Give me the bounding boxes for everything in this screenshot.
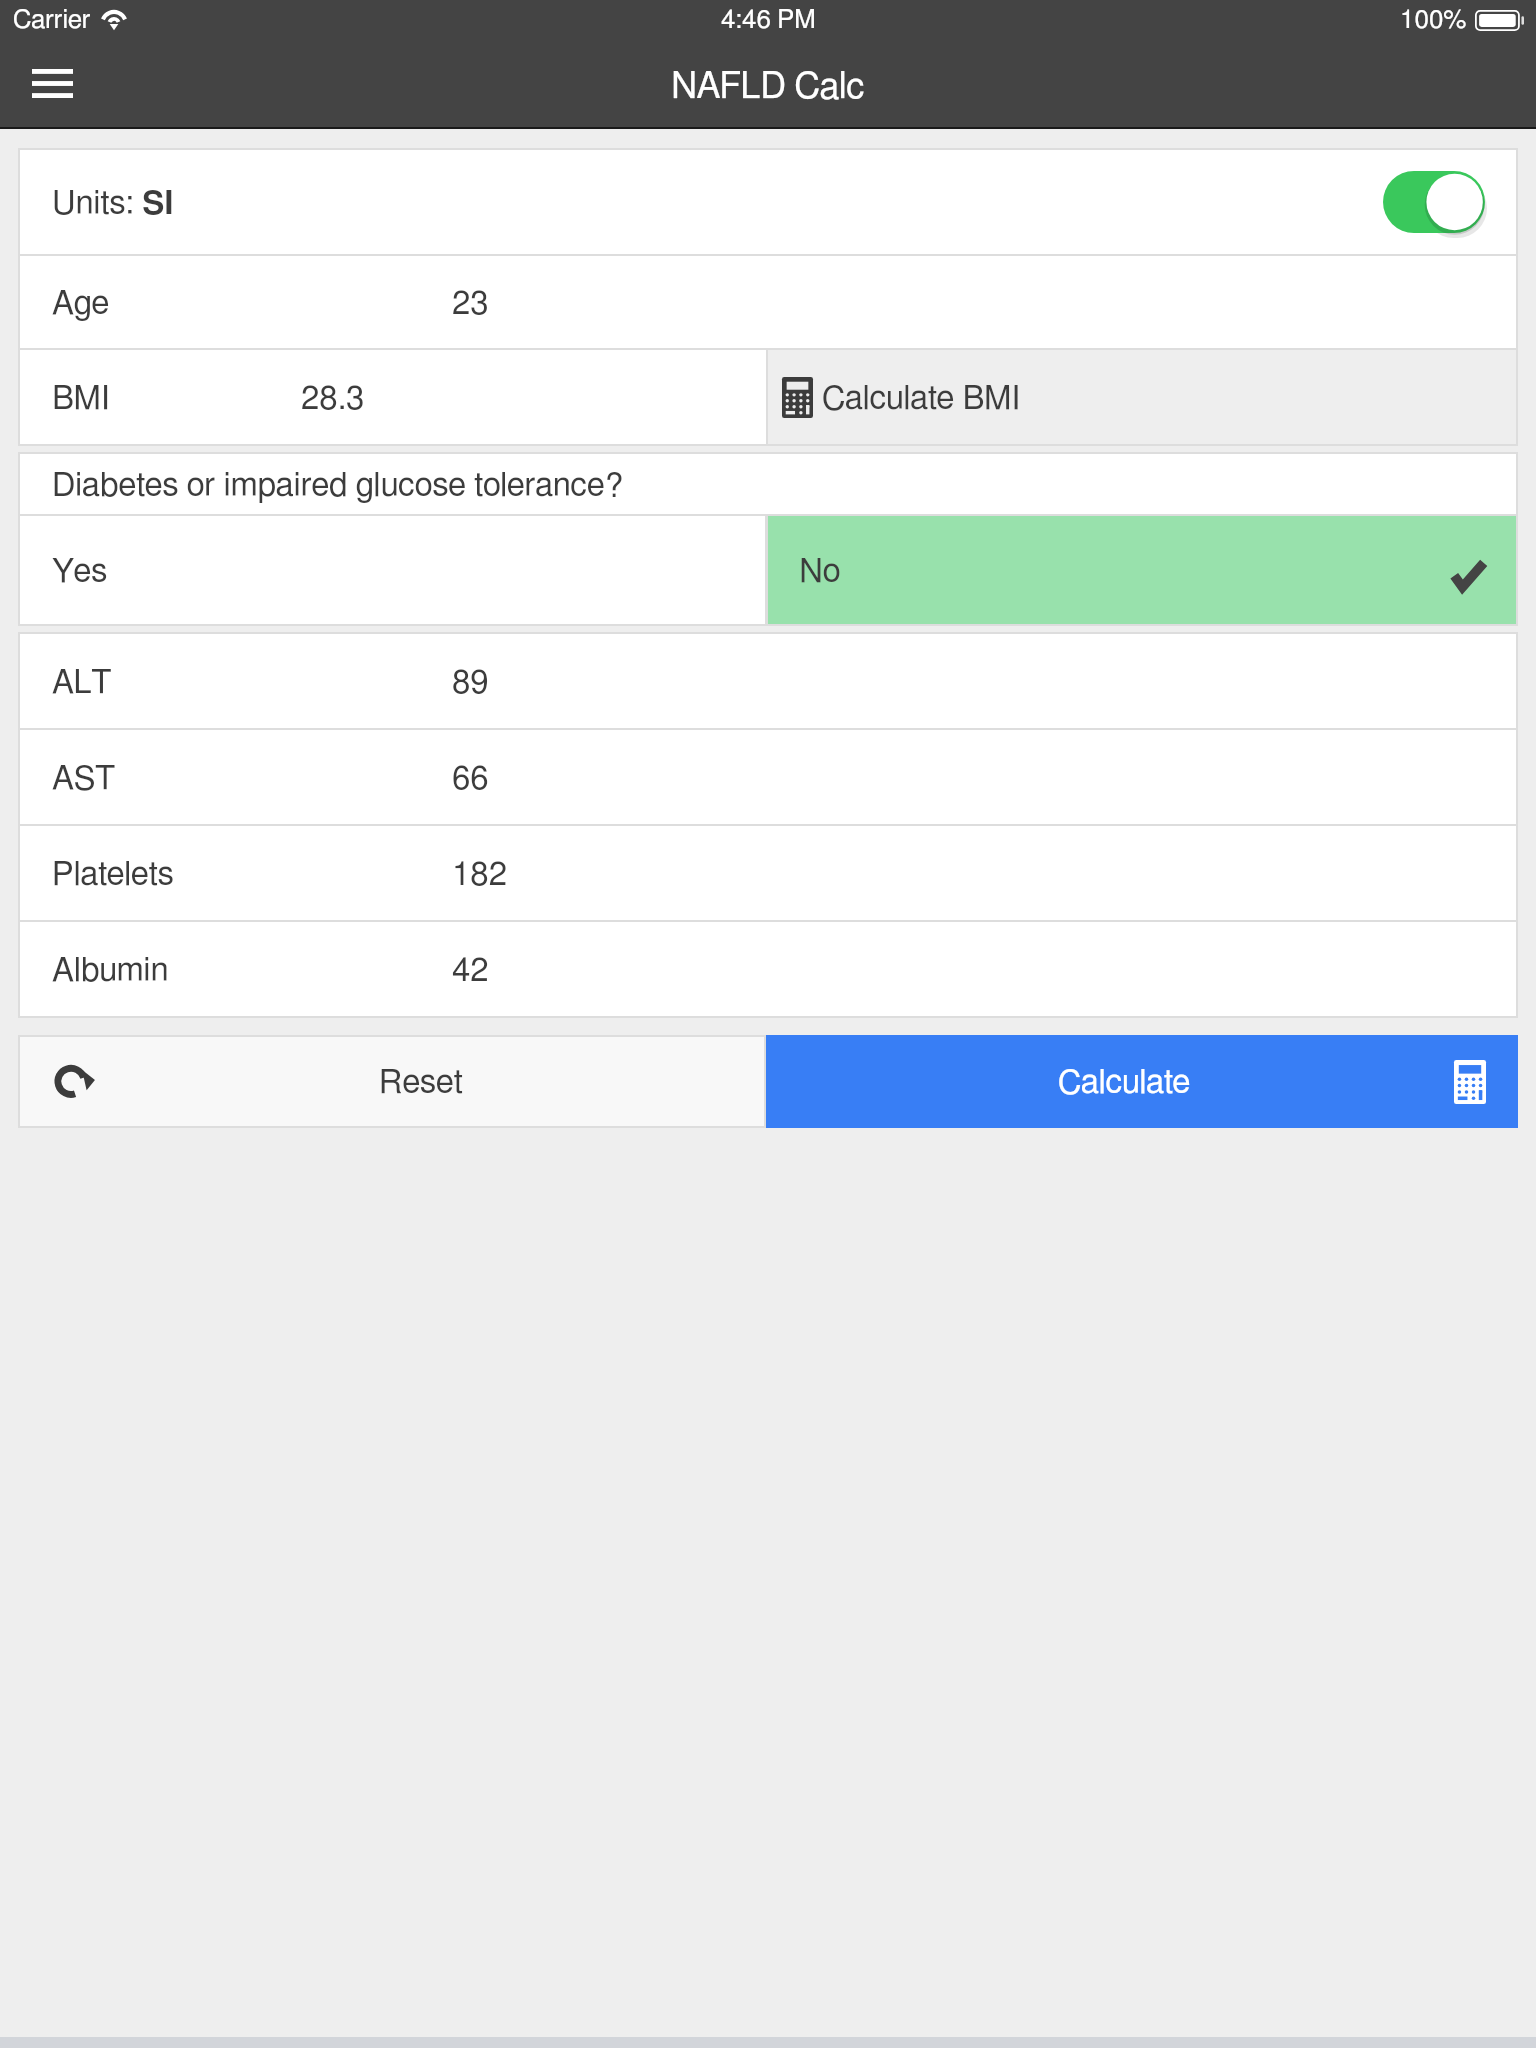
- staticText: Calculate: [1058, 1067, 1191, 1100]
- button[interactable]: No: [768, 516, 1516, 624]
- staticText: 42: [452, 955, 489, 988]
- staticText: 66: [452, 763, 489, 796]
- button[interactable]: Menu: [10, 40, 94, 127]
- staticText: Yes: [52, 556, 108, 589]
- button[interactable]: BMI: [20, 350, 766, 444]
- staticText: BMI: [52, 383, 111, 416]
- staticText: Albumin: [52, 955, 169, 988]
- staticText: NAFLD Calc: [671, 69, 865, 105]
- button[interactable]: AST: [20, 730, 1516, 824]
- button[interactable]: Reset: [20, 1037, 764, 1126]
- staticText: Calculate BMI: [822, 383, 1021, 416]
- staticText: Platelets: [52, 859, 174, 892]
- button[interactable]: Yes: [20, 516, 765, 624]
- staticText: SI: [142, 188, 175, 221]
- staticText: No: [799, 556, 841, 589]
- staticText: Carrier: [13, 7, 91, 33]
- button[interactable]: Calculate BMI: [768, 350, 1516, 444]
- staticText: Age: [52, 288, 110, 321]
- staticText: 28.3: [301, 383, 365, 416]
- staticText: 4:46 PM: [721, 7, 816, 33]
- button[interactable]: Units toggle: [1383, 171, 1485, 233]
- staticText: ALT: [52, 667, 112, 700]
- button[interactable]: Albumin: [20, 922, 1516, 1016]
- button[interactable]: Age: [20, 256, 1516, 348]
- button[interactable]: Units:: [20, 150, 1516, 254]
- staticText: 100%: [1400, 7, 1467, 33]
- staticText: 182: [452, 859, 508, 892]
- button[interactable]: ALT: [20, 634, 1516, 728]
- staticText: Units:: [52, 188, 142, 221]
- staticText: 23: [452, 288, 489, 321]
- staticText: Reset: [379, 1067, 463, 1100]
- button[interactable]: Calculate: [766, 1035, 1518, 1128]
- staticText: Diabetes or impaired glucose tolerance?: [52, 470, 623, 503]
- staticText: 89: [452, 667, 489, 700]
- staticText: AST: [52, 763, 116, 796]
- button[interactable]: Platelets: [20, 826, 1516, 920]
